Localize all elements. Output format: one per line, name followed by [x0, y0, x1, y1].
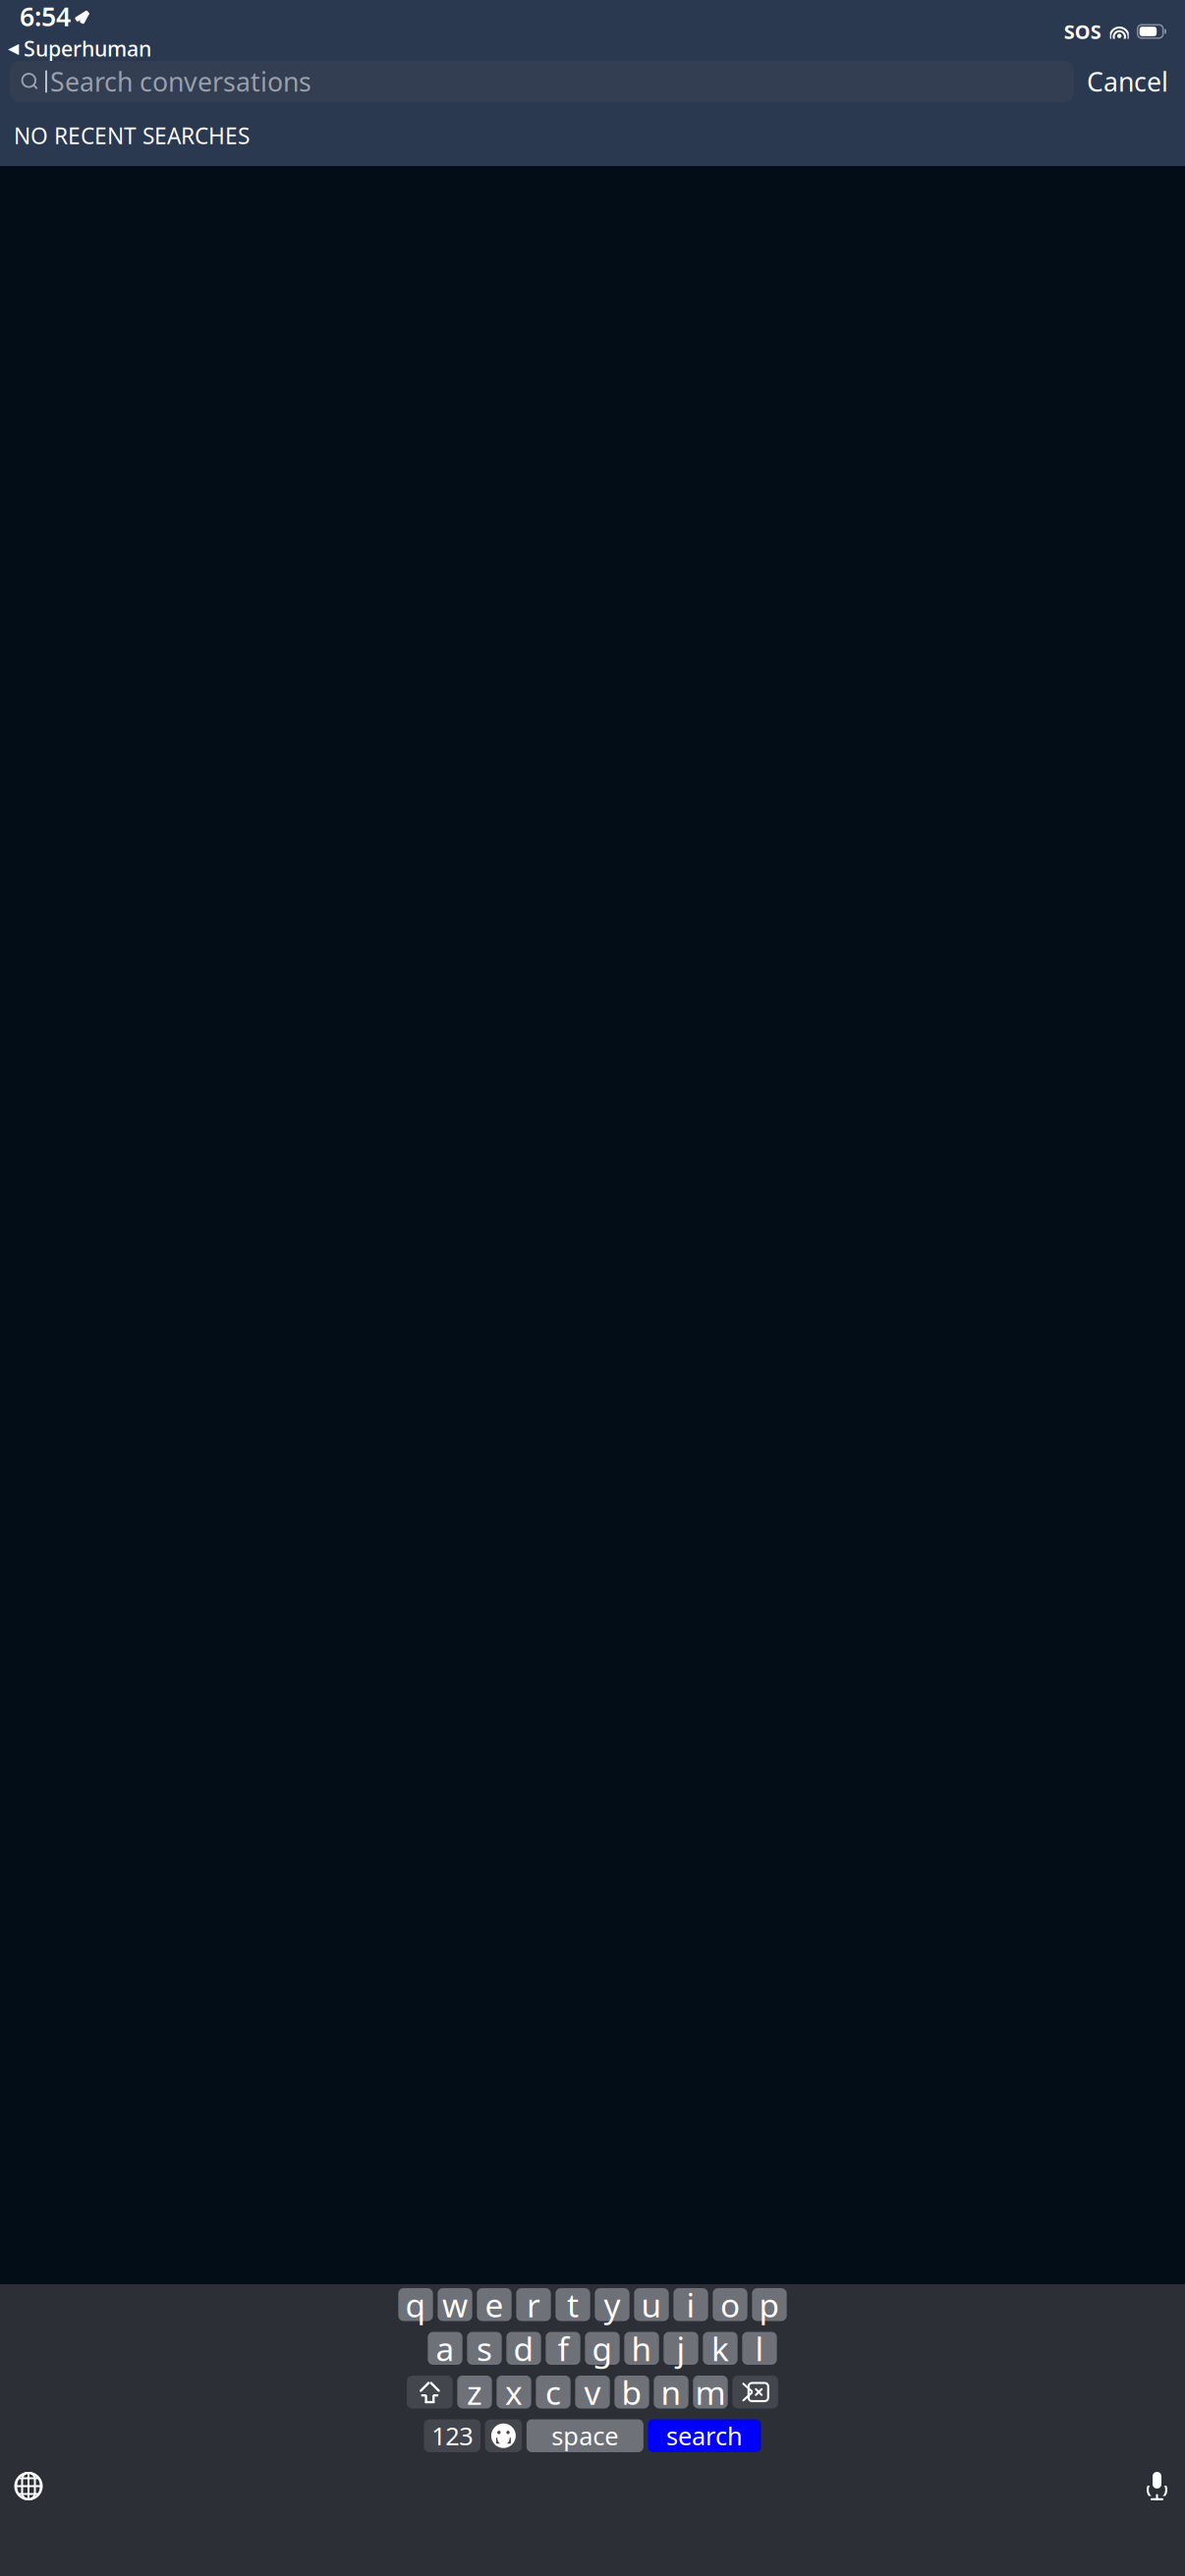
staticText: k: [711, 2327, 729, 2370]
staticText: f: [558, 2327, 568, 2370]
button[interactable]: space: [527, 2419, 643, 2452]
staticText: z: [467, 2370, 482, 2414]
staticText: 123: [432, 2419, 473, 2452]
button[interactable]: v: [575, 2376, 610, 2408]
button[interactable]: h: [624, 2332, 659, 2365]
button[interactable]: f: [546, 2332, 580, 2365]
staticText: Superhuman: [24, 34, 151, 62]
staticText: i: [686, 2283, 695, 2326]
button[interactable]: Next keyboard: [3, 2472, 43, 2500]
button[interactable]: q: [398, 2288, 433, 2321]
button[interactable]: m: [693, 2376, 728, 2408]
button[interactable]: w: [438, 2288, 472, 2321]
staticText: n: [661, 2370, 681, 2414]
button[interactable]: Cancel: [1074, 61, 1181, 102]
button[interactable]: a: [428, 2332, 462, 2365]
staticText: j: [677, 2327, 685, 2370]
staticText: o: [720, 2283, 740, 2326]
button[interactable]: Shift: [407, 2376, 453, 2408]
staticText: y: [604, 2283, 621, 2326]
button[interactable]: n: [654, 2376, 688, 2408]
staticText: Search conversations: [50, 64, 311, 99]
button[interactable]: Search conversations: [10, 61, 1074, 102]
staticText: ◀: [8, 40, 19, 56]
staticText: 6:54: [20, 0, 71, 33]
button[interactable]: g: [585, 2332, 620, 2365]
staticText: r: [527, 2283, 540, 2326]
button[interactable]: z: [457, 2376, 492, 2408]
button[interactable]: o: [713, 2288, 747, 2321]
button[interactable]: i: [673, 2288, 708, 2321]
staticText: m: [695, 2370, 726, 2414]
staticText: t: [567, 2283, 579, 2326]
staticText: h: [631, 2327, 652, 2370]
button[interactable]: 123: [424, 2419, 480, 2452]
button[interactable]: b: [614, 2376, 649, 2408]
staticText: q: [405, 2283, 426, 2326]
staticText: c: [545, 2370, 561, 2414]
staticText: l: [755, 2327, 764, 2370]
button[interactable]: r: [516, 2288, 551, 2321]
staticText: s: [477, 2327, 492, 2370]
button[interactable]: Dictate: [1145, 2470, 1182, 2502]
button[interactable]: j: [664, 2332, 698, 2365]
button[interactable]: y: [595, 2288, 629, 2321]
staticText: space: [552, 2419, 618, 2452]
button[interactable]: Emoji: [485, 2419, 522, 2452]
button[interactable]: d: [506, 2332, 541, 2365]
button[interactable]: t: [555, 2288, 590, 2321]
staticText: e: [485, 2283, 504, 2326]
staticText: a: [436, 2327, 454, 2370]
staticText: b: [621, 2370, 642, 2414]
staticText: w: [442, 2283, 468, 2326]
button[interactable]: search: [648, 2419, 761, 2452]
staticText: g: [592, 2327, 613, 2370]
staticText: u: [641, 2283, 662, 2326]
button[interactable]: c: [536, 2376, 570, 2408]
button[interactable]: Delete: [732, 2376, 778, 2408]
staticText: d: [513, 2327, 534, 2370]
staticText: x: [505, 2370, 523, 2414]
button[interactable]: x: [497, 2376, 531, 2408]
button[interactable]: s: [467, 2332, 502, 2365]
staticText: search: [666, 2419, 743, 2452]
button[interactable]: u: [634, 2288, 669, 2321]
button[interactable]: e: [477, 2288, 512, 2321]
button[interactable]: Back to Superhuman: [0, 33, 151, 62]
staticText: SOS: [1064, 18, 1101, 45]
staticText: NO RECENT SEARCHES: [14, 121, 250, 150]
button[interactable]: l: [742, 2332, 777, 2365]
button[interactable]: p: [752, 2288, 787, 2321]
staticText: Cancel: [1087, 64, 1168, 99]
button[interactable]: k: [703, 2332, 738, 2365]
staticText: v: [584, 2370, 601, 2414]
staticText: p: [759, 2283, 780, 2326]
